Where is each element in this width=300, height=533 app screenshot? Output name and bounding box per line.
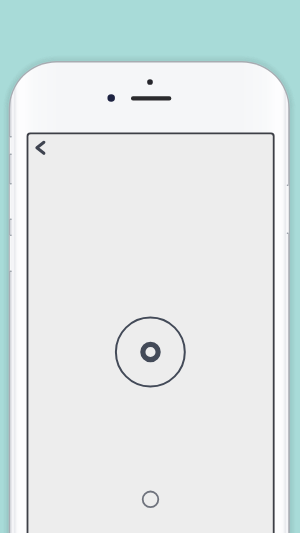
button[interactable]: Back bbox=[30, 136, 54, 160]
